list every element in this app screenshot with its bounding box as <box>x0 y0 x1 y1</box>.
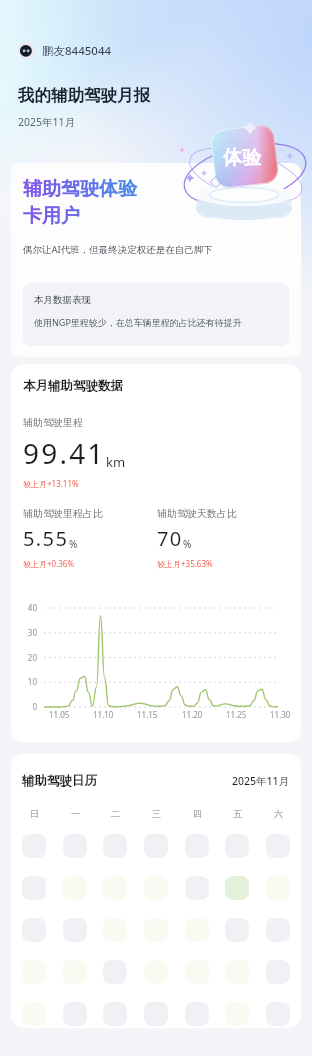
staticText: 三 <box>152 808 161 819</box>
staticText: 鹏友8445044 <box>42 43 112 59</box>
staticText: 99.41 <box>23 434 106 472</box>
staticText: 11.20 <box>182 709 203 720</box>
button[interactable] <box>63 834 87 858</box>
staticText: 一 <box>71 808 80 819</box>
staticText: 40 <box>23 602 37 613</box>
button[interactable] <box>22 834 46 858</box>
staticText: 较上月+13.11% <box>23 478 79 489</box>
button[interactable] <box>225 876 249 900</box>
staticText: 11.25 <box>226 709 247 720</box>
button[interactable] <box>22 918 46 942</box>
button[interactable]: 鹏友8445044 <box>18 42 112 59</box>
button[interactable] <box>144 876 168 900</box>
staticText: 辅助驾驶体验 <box>23 177 137 201</box>
button[interactable] <box>63 1002 87 1026</box>
staticText: 我的辅助驾驶月报 <box>18 85 150 106</box>
staticText: 偶尔让AI代班，但最终决定权还是在自己脚下 <box>23 243 213 256</box>
button[interactable] <box>144 960 168 984</box>
button[interactable] <box>225 918 249 942</box>
staticText: 辅助驾驶里程占比 <box>23 507 103 520</box>
button[interactable] <box>185 1002 209 1026</box>
staticText: 11.05 <box>49 709 70 720</box>
staticText: 辅助驾驶里程 <box>23 416 83 429</box>
button[interactable] <box>266 1002 290 1026</box>
button[interactable] <box>185 918 209 942</box>
button[interactable] <box>103 876 127 900</box>
staticText: 辅助驾驶日历 <box>22 773 97 789</box>
button[interactable] <box>63 918 87 942</box>
button[interactable] <box>103 918 127 942</box>
button[interactable] <box>22 1002 46 1026</box>
staticText: 二 <box>111 808 120 819</box>
staticText: 四 <box>193 808 202 819</box>
button[interactable] <box>63 960 87 984</box>
staticText: 0 <box>23 701 37 712</box>
button[interactable] <box>266 834 290 858</box>
staticText: 11.10 <box>93 709 114 720</box>
button[interactable] <box>22 876 46 900</box>
staticText: 使用NGP里程较少，在总车辆里程的占比还有待提升 <box>34 316 242 328</box>
button[interactable] <box>185 834 209 858</box>
staticText: 30 <box>23 627 37 638</box>
button[interactable] <box>266 960 290 984</box>
staticText: 五 <box>233 808 242 819</box>
button[interactable]: 辅助驾驶体验 <box>11 163 301 357</box>
other: 体验卡徽章 <box>170 116 312 236</box>
staticText: 2025年11月 <box>18 115 76 129</box>
staticText: % <box>69 537 78 551</box>
staticText: 20 <box>23 652 37 663</box>
button[interactable] <box>144 834 168 858</box>
staticText: 70 <box>157 525 183 552</box>
button[interactable] <box>144 1002 168 1026</box>
button[interactable] <box>225 960 249 984</box>
button[interactable] <box>185 960 209 984</box>
button[interactable] <box>63 876 87 900</box>
button[interactable] <box>266 918 290 942</box>
button[interactable] <box>103 960 127 984</box>
button[interactable]: 本月辅助驾驶数据 <box>11 364 301 742</box>
staticText: 11.30 <box>270 709 291 720</box>
staticText: 辅助驾驶天数占比 <box>157 507 237 520</box>
button[interactable]: 辅助驾驶日历 <box>11 754 301 1028</box>
staticText: 10 <box>23 676 37 687</box>
staticText: 本月数据表现 <box>34 294 91 306</box>
button[interactable] <box>22 960 46 984</box>
button[interactable] <box>103 1002 127 1026</box>
staticText: 六 <box>274 808 283 819</box>
staticText: 2025年11月 <box>232 774 290 788</box>
staticText: km <box>106 453 126 471</box>
button[interactable] <box>185 876 209 900</box>
staticText: 较上月+0.36% <box>23 558 75 569</box>
button[interactable] <box>103 834 127 858</box>
staticText: 日 <box>30 808 39 819</box>
staticText: 5.55 <box>23 525 69 552</box>
button[interactable] <box>266 876 290 900</box>
button[interactable] <box>225 1002 249 1026</box>
staticText: % <box>183 537 192 551</box>
staticText: 本月辅助驾驶数据 <box>23 378 123 394</box>
staticText: 卡用户 <box>23 204 80 228</box>
button[interactable] <box>144 918 168 942</box>
staticText: 体验 <box>223 146 261 170</box>
staticText: 较上月+35.63% <box>157 558 213 569</box>
staticText: 11.15 <box>137 709 158 720</box>
button[interactable] <box>225 834 249 858</box>
